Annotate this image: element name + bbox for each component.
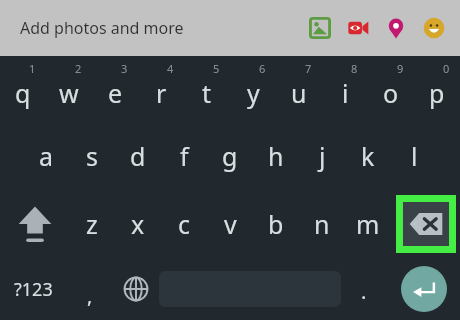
button[interactable]: 0: [414, 56, 460, 122]
button[interactable]: 3: [92, 56, 138, 122]
button[interactable]: c: [161, 190, 207, 258]
button[interactable]: n: [299, 190, 345, 258]
staticText: h: [268, 139, 284, 173]
staticText: 0: [443, 61, 450, 76]
button[interactable]: x: [115, 190, 161, 258]
button[interactable]: m: [345, 190, 391, 258]
button[interactable]: h: [253, 122, 299, 190]
staticText: ,: [87, 282, 93, 309]
button[interactable]: Space: [159, 258, 341, 320]
staticText: m: [356, 207, 380, 241]
staticText: n: [314, 207, 330, 241]
staticText: 8: [351, 61, 358, 76]
button[interactable]: Emoji: [420, 14, 448, 42]
button[interactable]: 9: [368, 56, 414, 122]
staticText: j: [319, 139, 326, 173]
staticText: .: [361, 278, 367, 305]
staticText: v: [224, 207, 237, 241]
button[interactable]: 5: [184, 56, 230, 122]
button[interactable]: l: [391, 122, 437, 190]
button[interactable]: a: [23, 122, 69, 190]
staticText: o: [383, 76, 399, 110]
staticText: c: [178, 207, 191, 241]
staticText: y: [247, 76, 260, 110]
staticText: r: [156, 76, 167, 110]
staticText: a: [39, 139, 54, 173]
button[interactable]: 1: [0, 56, 46, 122]
button[interactable]: b: [253, 190, 299, 258]
button[interactable]: 4: [138, 56, 184, 122]
button[interactable]: 8: [322, 56, 368, 122]
button[interactable]: .: [341, 258, 387, 320]
button[interactable]: Add photo: [306, 14, 334, 42]
button[interactable]: f: [161, 122, 207, 190]
staticText: w: [59, 76, 79, 110]
button[interactable]: k: [345, 122, 391, 190]
staticText: 7: [305, 61, 312, 76]
button[interactable]: 7: [276, 56, 322, 122]
staticText: k: [361, 139, 375, 173]
button[interactable]: Add photos and more: [14, 11, 190, 45]
staticText: t: [202, 76, 212, 110]
button[interactable]: Backspace: [391, 190, 460, 258]
staticText: u: [291, 76, 307, 110]
button[interactable]: Enter: [387, 258, 460, 320]
button[interactable]: ,: [67, 258, 113, 320]
button[interactable]: 6: [230, 56, 276, 122]
staticText: l: [411, 139, 418, 173]
staticText: z: [86, 207, 98, 241]
staticText: i: [342, 76, 349, 110]
staticText: ?123: [14, 277, 53, 302]
button[interactable]: Video: [344, 14, 372, 42]
button[interactable]: Location: [382, 14, 410, 42]
staticText: p: [429, 76, 445, 110]
staticText: 5: [213, 61, 220, 76]
staticText: 1: [29, 61, 36, 76]
staticText: s: [86, 139, 98, 173]
button[interactable]: d: [115, 122, 161, 190]
staticText: e: [108, 76, 123, 110]
button[interactable]: z: [69, 190, 115, 258]
staticText: b: [268, 207, 284, 241]
staticText: Add photos and more: [20, 17, 184, 39]
staticText: 2: [75, 61, 82, 76]
button[interactable]: j: [299, 122, 345, 190]
staticText: 3: [121, 61, 128, 76]
button[interactable]: 2: [46, 56, 92, 122]
button[interactable]: v: [207, 190, 253, 258]
button[interactable]: ?123: [0, 258, 67, 320]
button[interactable]: Shift: [0, 190, 69, 258]
staticText: q: [15, 76, 31, 110]
staticText: x: [131, 207, 145, 241]
staticText: 6: [259, 61, 266, 76]
staticText: 9: [397, 61, 404, 76]
staticText: g: [222, 139, 238, 173]
button[interactable]: Change language: [113, 258, 159, 320]
staticText: 4: [167, 61, 174, 76]
staticText: d: [130, 139, 146, 173]
button[interactable]: g: [207, 122, 253, 190]
button[interactable]: s: [69, 122, 115, 190]
staticText: f: [180, 139, 189, 173]
